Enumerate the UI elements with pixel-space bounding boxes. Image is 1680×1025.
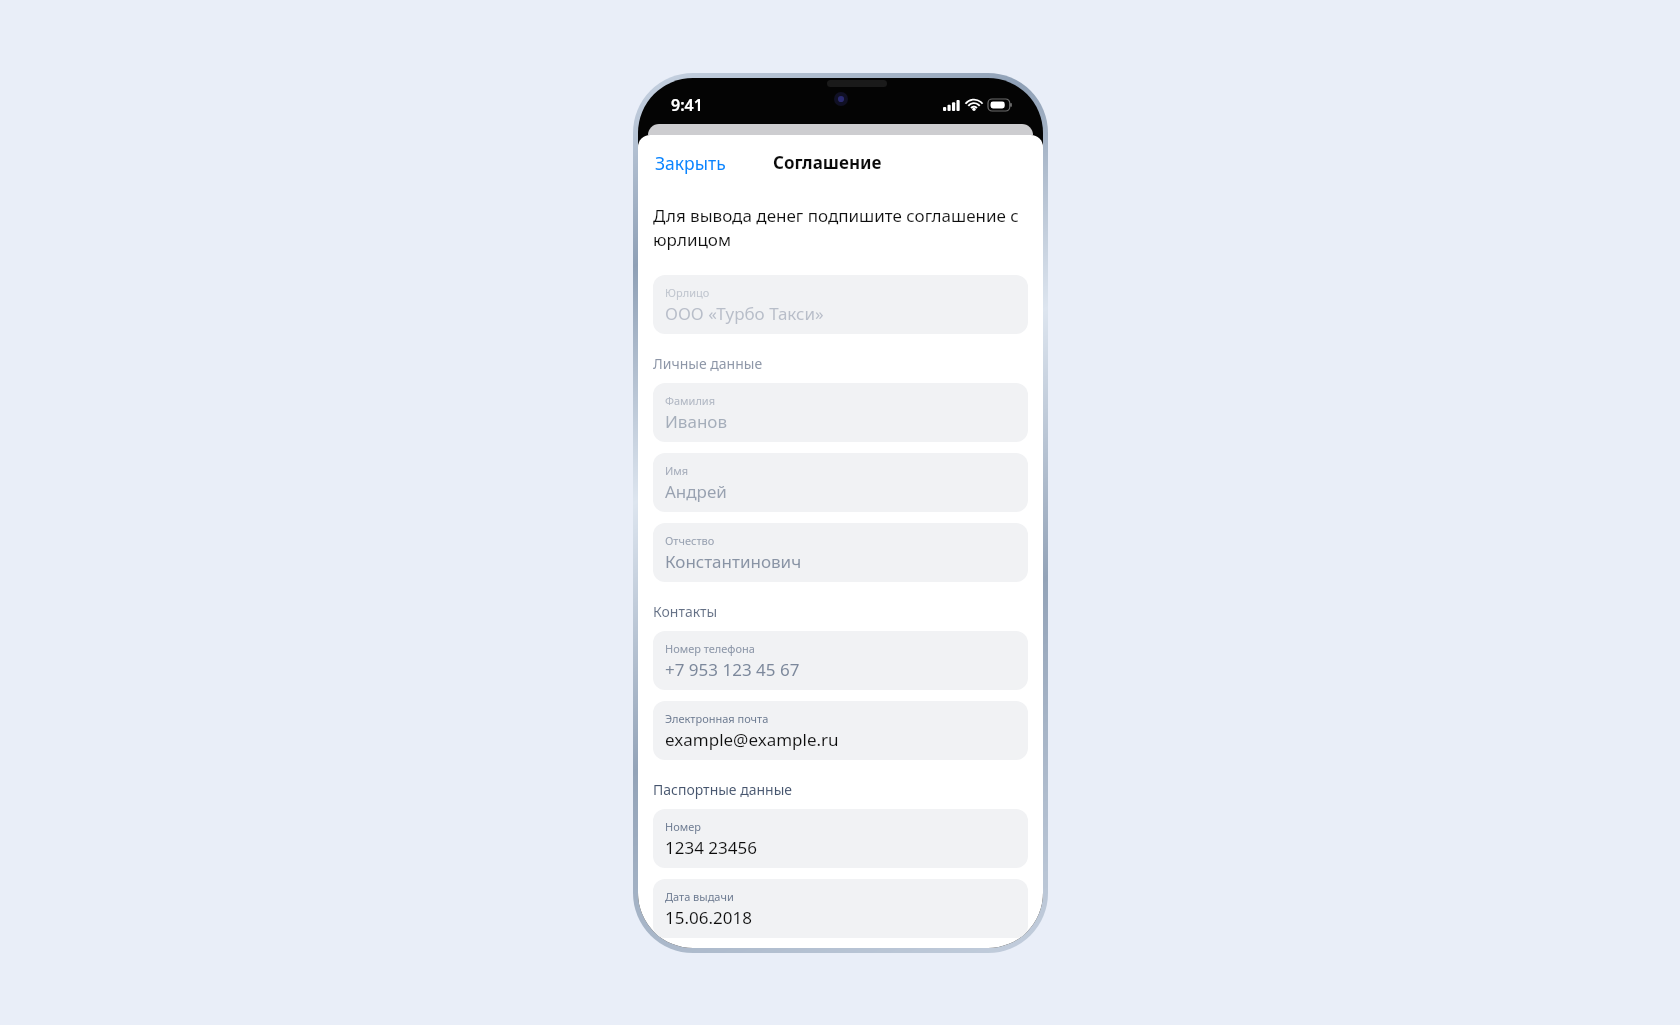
staticText: Иванов: [665, 410, 728, 433]
staticText: Паспортные данные: [653, 780, 793, 799]
button[interactable]: Фамилия: [653, 383, 1028, 442]
staticText: Андрей: [665, 480, 727, 503]
staticText: 1234 23456: [665, 836, 757, 859]
staticText: 15.06.2018: [665, 906, 752, 929]
button[interactable]: Закрыть: [653, 145, 728, 181]
staticText: Соглашение: [773, 151, 882, 174]
staticText: Личные данные: [653, 354, 763, 373]
staticText: Имя: [665, 463, 689, 478]
staticText: Номер: [665, 819, 701, 834]
button[interactable]: Дата выдачи: [653, 879, 1028, 938]
staticText: Фамилия: [665, 393, 716, 408]
staticText: 9:41: [671, 94, 703, 116]
staticText: Для вывода денег подпишите соглашение с …: [653, 204, 1028, 251]
staticText: Закрыть: [655, 151, 726, 175]
button[interactable]: Электронная почта: [653, 701, 1028, 760]
staticText: Юрлицо: [665, 285, 710, 300]
staticText: ООО «Турбо Такси»: [665, 302, 824, 325]
staticText: Константинович: [665, 550, 802, 573]
staticText: example@example.ru: [665, 728, 839, 751]
staticText: Номер телефона: [665, 641, 755, 656]
button[interactable]: Номер: [653, 809, 1028, 868]
button[interactable]: Номер телефона: [653, 631, 1028, 690]
staticText: Контакты: [653, 602, 718, 621]
staticText: Электронная почта: [665, 711, 769, 726]
staticText: +7 953 123 45 67: [665, 658, 800, 681]
button[interactable]: Имя: [653, 453, 1028, 512]
button[interactable]: Отчество: [653, 523, 1028, 582]
button[interactable]: Юрлицо: [653, 275, 1028, 334]
staticText: Дата выдачи: [665, 889, 734, 904]
staticText: Отчество: [665, 533, 715, 548]
